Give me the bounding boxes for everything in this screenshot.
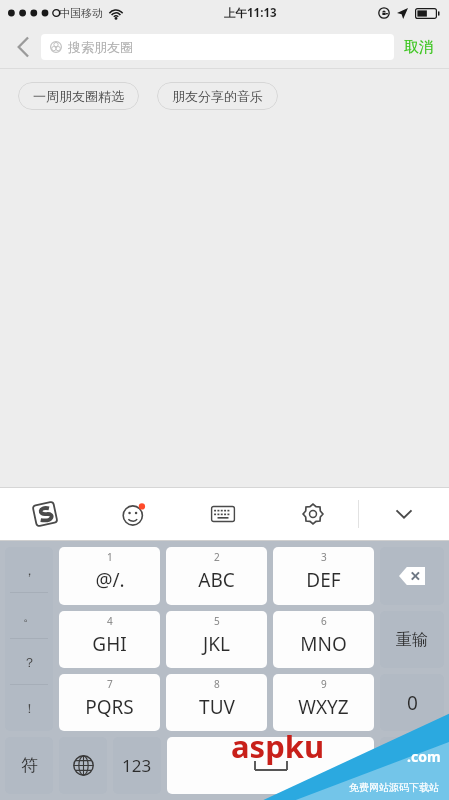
staticText: @/. [95, 567, 125, 593]
button[interactable]: Space [167, 737, 374, 794]
staticText: 中国移动 [59, 6, 103, 20]
staticText: 0 [407, 690, 418, 716]
button[interactable]: ？ [5, 639, 53, 685]
button[interactable]: 符 [5, 737, 53, 794]
staticText: 重输 [396, 630, 428, 650]
button[interactable]: Enter [380, 737, 444, 794]
staticText: GHI [92, 631, 127, 657]
staticText: 4 [107, 614, 113, 628]
button[interactable]: 123 [113, 737, 161, 794]
button[interactable]: ， [5, 547, 53, 593]
staticText: ？ [23, 654, 36, 670]
staticText: 5 [214, 614, 220, 628]
button[interactable]: 朋友分享的音乐 [157, 82, 278, 110]
staticText: WXYZ [298, 694, 349, 720]
button[interactable]: 重输 [380, 611, 444, 668]
staticText: JKL [203, 631, 230, 657]
button[interactable]: 2 [166, 547, 267, 605]
staticText: 上午11:13 [224, 5, 277, 21]
staticText: TUV [199, 694, 235, 720]
button[interactable]: 0 [380, 674, 444, 731]
button[interactable]: 取消 [404, 38, 434, 57]
staticText: 8 [214, 677, 220, 691]
staticText: 。 [23, 608, 36, 624]
staticText: PQRS [85, 694, 134, 720]
button[interactable]: 7 [59, 674, 160, 731]
button[interactable]: 1 [59, 547, 160, 605]
button[interactable]: Delete [380, 547, 444, 605]
button[interactable]: 。 [5, 593, 53, 639]
staticText: MNO [300, 631, 347, 657]
button[interactable]: 3 [273, 547, 374, 605]
button[interactable]: 8 [166, 674, 267, 731]
button[interactable]: Back [5, 27, 41, 67]
staticText: 3 [321, 550, 327, 564]
button[interactable]: 搜索朋友圈 [41, 34, 394, 60]
staticText: 朋友分享的音乐 [172, 88, 263, 104]
button[interactable]: Keyboard layout [178, 488, 268, 540]
staticText: 一周朋友圈精选 [33, 88, 124, 104]
staticText: 2 [214, 550, 220, 564]
button[interactable]: Hide keyboard [359, 488, 449, 540]
staticText: 1 [107, 550, 113, 564]
button[interactable]: 9 [273, 674, 374, 731]
button[interactable]: Settings [268, 488, 358, 540]
staticText: aspku [231, 725, 325, 767]
staticText: ！ [23, 700, 36, 716]
staticText: .com [407, 747, 441, 766]
button[interactable]: ！ [5, 685, 53, 731]
button[interactable]: 4 [59, 611, 160, 668]
staticText: 6 [321, 614, 327, 628]
staticText: 9 [321, 677, 327, 691]
staticText: 搜索朋友圈 [68, 39, 133, 55]
staticText: 123 [122, 754, 152, 777]
button[interactable]: 6 [273, 611, 374, 668]
staticText: 免费网站源码下载站 [349, 781, 439, 794]
button[interactable]: Switch language [59, 737, 107, 794]
staticText: 7 [107, 677, 113, 691]
staticText: ABC [198, 567, 235, 593]
staticText: ， [23, 562, 36, 578]
button[interactable]: 一周朋友圈精选 [18, 82, 139, 110]
button[interactable]: Sogou input [0, 488, 89, 540]
staticText: 符 [21, 755, 38, 776]
button[interactable]: 5 [166, 611, 267, 668]
button[interactable]: Emoji [89, 488, 178, 540]
staticText: 取消 [404, 38, 434, 57]
staticText: DEF [306, 567, 341, 593]
